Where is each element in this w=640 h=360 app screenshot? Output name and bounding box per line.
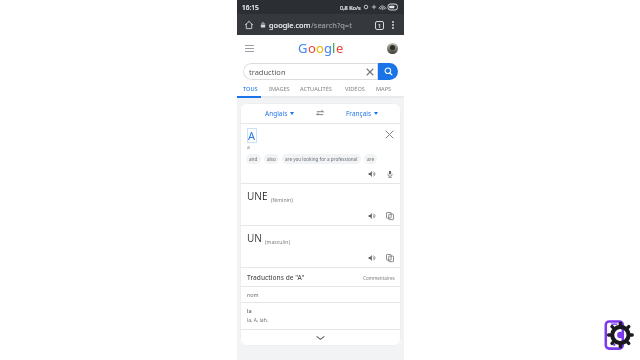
staticText: o (316, 39, 324, 57)
button[interactable]: Search (378, 63, 398, 80)
staticText: Anglais (265, 109, 288, 118)
staticText: g (324, 39, 332, 57)
button[interactable]: Copy (384, 252, 396, 264)
staticText: UNE (247, 189, 268, 203)
staticText: la (247, 307, 252, 315)
button[interactable]: Clear text (383, 128, 396, 141)
staticText: also (267, 156, 276, 162)
staticText: G (298, 39, 308, 57)
button[interactable]: More options (387, 19, 399, 31)
staticText: Traductions de "A" (247, 273, 305, 282)
staticText: MAPS (376, 85, 392, 93)
staticText: IMAGES (269, 85, 290, 93)
staticText: (masculin) (265, 238, 290, 245)
staticText: nom (247, 291, 259, 298)
button[interactable]: MAPS (376, 82, 400, 96)
staticText: A (248, 128, 256, 143)
button[interactable]: Home (242, 18, 256, 32)
button[interactable]: Anglais (246, 103, 312, 123)
staticText: a (247, 144, 250, 151)
staticText: o (308, 39, 316, 57)
button[interactable]: traduction (249, 63, 375, 80)
button[interactable]: Clear (364, 66, 375, 77)
button[interactable]: Account (386, 42, 399, 55)
staticText: are you looking for a professional (285, 156, 358, 162)
button[interactable]: are (367, 156, 374, 162)
staticText: Français (346, 109, 372, 118)
staticText: 0,8 Ko/s (340, 4, 361, 11)
staticText: e (336, 39, 344, 57)
button[interactable]: Tabs (373, 19, 385, 31)
button[interactable]: Copy (384, 210, 396, 222)
button[interactable]: also (267, 156, 276, 162)
button[interactable]: Menu (241, 40, 257, 56)
staticText: UN (247, 231, 262, 245)
staticText: VIDÉOS (345, 85, 365, 93)
staticText: TOUS (243, 85, 258, 93)
button[interactable]: Listen (366, 168, 378, 180)
staticText: google.com (269, 20, 311, 30)
staticText: 16:15 (242, 3, 259, 12)
button[interactable]: Listen (366, 210, 378, 222)
button[interactable]: Voice input (384, 168, 396, 180)
staticText: /search?q=t (311, 20, 352, 30)
button[interactable]: Commentaires (363, 275, 395, 281)
staticText: traduction (249, 67, 286, 77)
staticText: 1 (378, 22, 382, 29)
button[interactable]: and (249, 156, 258, 162)
button[interactable]: Listen (366, 252, 378, 264)
button[interactable]: Expand (240, 330, 401, 346)
staticText: are (367, 156, 374, 162)
staticText: Commentaires (363, 275, 395, 281)
button[interactable]: IMAGES (269, 82, 300, 96)
button[interactable]: TOUS (243, 82, 269, 96)
button[interactable]: ACTUALITÉS (300, 82, 345, 96)
button[interactable]: are you looking for a professional (285, 156, 358, 162)
button[interactable]: VIDÉOS (345, 82, 376, 96)
staticText: and (249, 156, 258, 162)
button[interactable]: google.com (269, 20, 370, 30)
button[interactable]: Français (328, 103, 395, 123)
staticText: ACTUALITÉS (300, 85, 332, 93)
staticText: (féminin) (271, 196, 293, 203)
button[interactable]: Swap languages (312, 105, 328, 121)
staticText: l (332, 39, 336, 57)
staticText: la, A, lah. (247, 317, 269, 324)
